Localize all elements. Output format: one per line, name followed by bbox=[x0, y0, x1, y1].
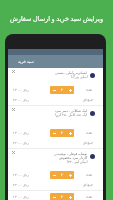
staticText: ۱۲٬۰۰۰ ریال bbox=[13, 173, 29, 177]
button[interactable]: Increase bbox=[66, 171, 74, 179]
staticText: ۲ bbox=[61, 131, 63, 135]
button[interactable]: Remove item bbox=[10, 68, 17, 75]
staticText: تعداد bbox=[86, 88, 93, 92]
staticText: ۲۴٬۰۰۰ ریال bbox=[13, 141, 29, 145]
staticText: جمع کل bbox=[83, 98, 93, 102]
staticText: ۱۲٬۰۰۰ ریال bbox=[13, 88, 29, 92]
staticText: تعداد bbox=[86, 131, 93, 135]
button[interactable]: Decrease bbox=[50, 129, 58, 137]
staticText: سبد خرید bbox=[18, 59, 34, 64]
button[interactable]: Remove item bbox=[10, 106, 17, 113]
staticText: ۲۴٬۰۰۰ ریال bbox=[13, 183, 29, 187]
staticText: ۱۲٬۰۰۰ ریال bbox=[13, 195, 29, 199]
button[interactable]: Increase bbox=[66, 129, 74, 137]
button[interactable]: Decrease bbox=[50, 86, 58, 94]
staticText: ویرایش سبد خرید و ارسال سفارش bbox=[10, 14, 103, 23]
staticText: ۲۴٬۰۰۰ ریال bbox=[13, 98, 29, 102]
staticText: ۲ bbox=[61, 195, 63, 199]
staticText: آیسکریم وانیلی - بستنی bbox=[55, 70, 88, 74]
staticText: تعداد bbox=[86, 173, 93, 177]
staticText: جمع کل bbox=[83, 141, 93, 145]
staticText: نوشابه قوطی - نوشیدنی bbox=[54, 151, 88, 155]
button[interactable]: Increase bbox=[66, 86, 74, 94]
staticText: تعداد bbox=[86, 195, 93, 199]
staticText: (سایز بزرگ) bbox=[71, 74, 88, 78]
staticText: (یک عدد کامل ۲۵۰ گرم) bbox=[55, 112, 88, 116]
staticText: ۱۲٬۰۰۰ ریال bbox=[13, 131, 29, 135]
staticText: (۳۳۰ میلی لیتر) bbox=[67, 159, 88, 163]
staticText: ۲ bbox=[61, 173, 63, 177]
staticText: کیک شکلاتی - دسر سرد bbox=[55, 108, 88, 112]
button[interactable]: Remove item bbox=[10, 149, 17, 156]
button[interactable]: Decrease bbox=[50, 171, 58, 179]
staticText: گازدار سرد مخصوص bbox=[59, 155, 88, 159]
button[interactable]: Decrease bbox=[50, 193, 58, 200]
button[interactable]: Increase bbox=[66, 193, 74, 200]
staticText: ۲ bbox=[61, 88, 63, 92]
staticText: جمع کل bbox=[83, 183, 93, 187]
